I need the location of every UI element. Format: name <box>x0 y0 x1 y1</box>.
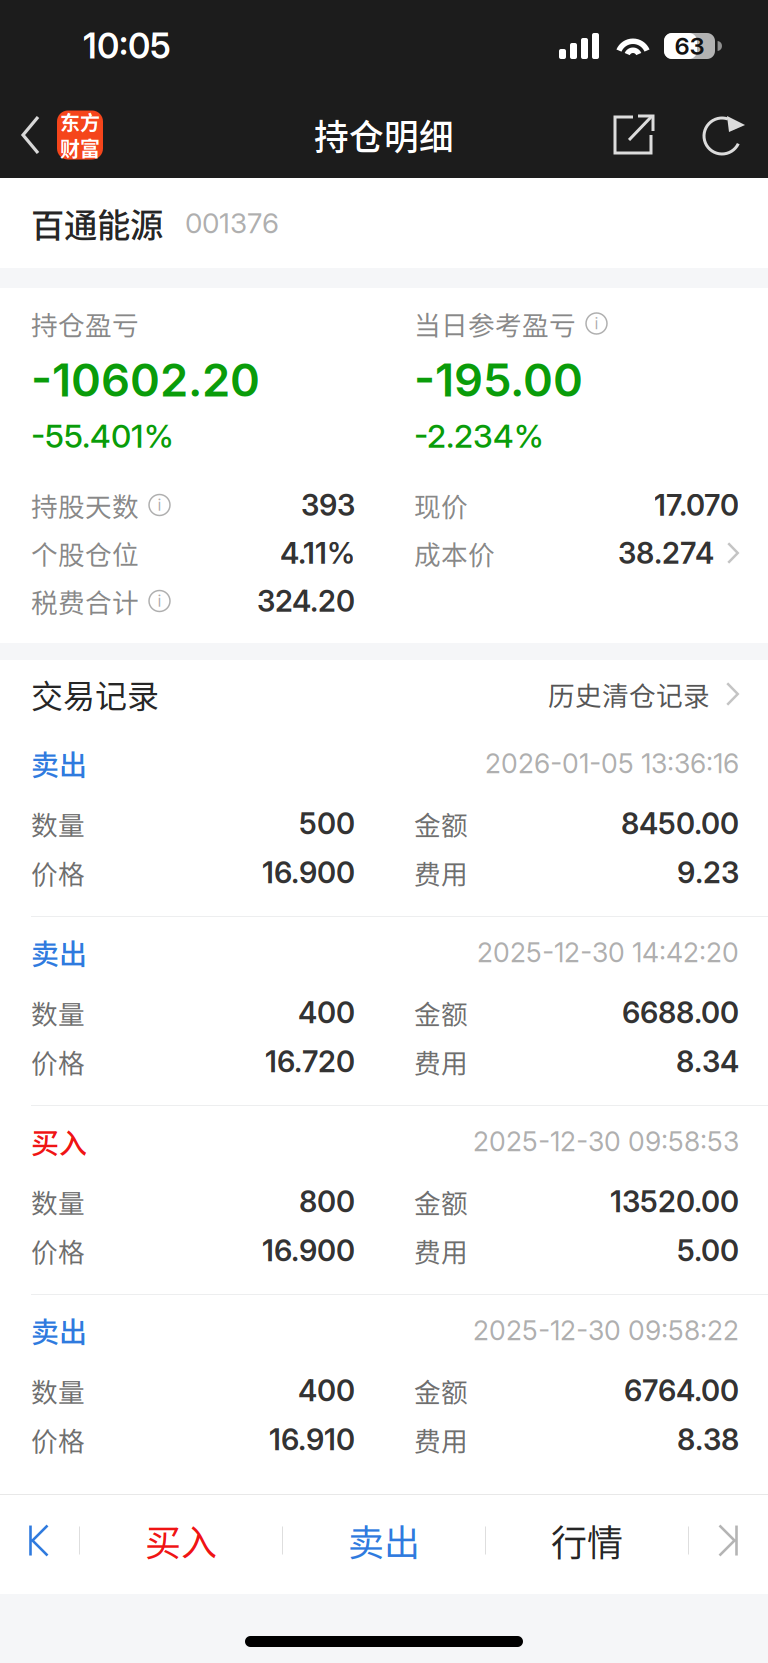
staticText: 324.20 <box>257 583 355 619</box>
staticText: 2025-12-30 09:58:22 <box>473 1314 739 1347</box>
staticText: 10:05 <box>83 25 171 67</box>
staticText: 2025-12-30 14:42:20 <box>477 936 739 969</box>
staticText: 费用 <box>414 1420 468 1459</box>
staticText: 8.38 <box>677 1422 739 1457</box>
button[interactable]: 下一只 <box>689 1494 768 1586</box>
staticText: 费用 <box>414 1042 468 1081</box>
staticText: 税费合计 <box>31 582 139 620</box>
staticText: 当日参考盈亏 <box>414 304 576 343</box>
staticText: 数量 <box>31 993 85 1032</box>
staticText: 费用 <box>414 853 468 892</box>
staticText: 金额 <box>414 993 468 1032</box>
button[interactable]: 历史清仓记录 <box>548 675 739 713</box>
staticText: 历史清仓记录 <box>548 675 710 713</box>
staticText: 买入 <box>31 1121 87 1162</box>
button[interactable]: 卖出 <box>283 1494 485 1586</box>
staticText: 数量 <box>31 1371 85 1410</box>
staticText: 数量 <box>31 804 85 843</box>
button[interactable]: 上一只 <box>0 1494 79 1586</box>
staticText: 东方 <box>60 107 100 136</box>
staticText: 个股仓位 <box>31 534 139 572</box>
staticText: 9.23 <box>677 855 739 890</box>
staticText: -2.234% <box>414 417 544 455</box>
staticText: 8450.00 <box>621 806 739 841</box>
button[interactable]: 分享 <box>599 92 669 178</box>
staticText: 16.900 <box>262 855 355 890</box>
staticText: 17.070 <box>654 487 739 523</box>
staticText: 800 <box>299 1184 355 1219</box>
staticText: 38.274 <box>618 535 714 571</box>
staticText: 16.910 <box>269 1422 355 1457</box>
staticText: i <box>157 495 161 515</box>
staticText: 价格 <box>31 1420 85 1459</box>
staticText: 400 <box>298 995 355 1030</box>
staticText: 16.900 <box>262 1233 355 1268</box>
staticText: 4.11% <box>280 535 355 571</box>
button[interactable]: 返回 <box>0 92 115 178</box>
staticText: 卖出 <box>31 743 87 784</box>
staticText: 持仓明细 <box>314 110 454 160</box>
staticText: 行情 <box>551 1514 623 1566</box>
staticText: 6764.00 <box>624 1373 739 1408</box>
staticText: 63 <box>674 31 704 60</box>
staticText: 400 <box>298 1373 355 1408</box>
staticText: 16.720 <box>265 1044 355 1079</box>
staticText: 卖出 <box>31 932 87 973</box>
staticText: 百通能源 <box>31 199 163 247</box>
staticText: 500 <box>299 806 355 841</box>
staticText: 交易记录 <box>31 671 159 717</box>
staticText: i <box>594 314 598 333</box>
staticText: 费用 <box>414 1231 468 1270</box>
button[interactable]: 刷新 <box>691 92 755 178</box>
staticText: 8.34 <box>676 1044 739 1079</box>
staticText: -10602.20 <box>31 353 260 407</box>
staticText: 001376 <box>185 206 279 240</box>
staticText: i <box>157 591 161 611</box>
staticText: 393 <box>301 487 355 523</box>
staticText: 数量 <box>31 1182 85 1221</box>
staticText: -55.401% <box>31 417 174 455</box>
staticText: 金额 <box>414 804 468 843</box>
staticText: 现价 <box>414 486 468 524</box>
staticText: 持股天数 <box>31 486 139 524</box>
staticText: 价格 <box>31 1042 85 1081</box>
staticText: 价格 <box>31 853 85 892</box>
staticText: 成本价 <box>414 534 495 572</box>
staticText: 5.00 <box>677 1233 739 1268</box>
staticText: 6688.00 <box>622 995 739 1030</box>
staticText: 买入 <box>145 1514 217 1566</box>
staticText: 持仓盈亏 <box>31 304 139 343</box>
staticText: 金额 <box>414 1182 468 1221</box>
staticText: 2026-01-05 13:36:16 <box>485 747 739 780</box>
staticText: 2025-12-30 09:58:53 <box>473 1125 739 1158</box>
staticText: 卖出 <box>348 1514 420 1566</box>
button[interactable]: 行情 <box>486 1494 688 1586</box>
staticText: -195.00 <box>414 353 583 407</box>
staticText: 价格 <box>31 1231 85 1270</box>
staticText: 金额 <box>414 1371 468 1410</box>
staticText: 财富 <box>60 133 100 162</box>
staticText: 13520.00 <box>610 1184 739 1219</box>
button[interactable]: 买入 <box>80 1494 282 1586</box>
staticText: 卖出 <box>31 1310 87 1351</box>
